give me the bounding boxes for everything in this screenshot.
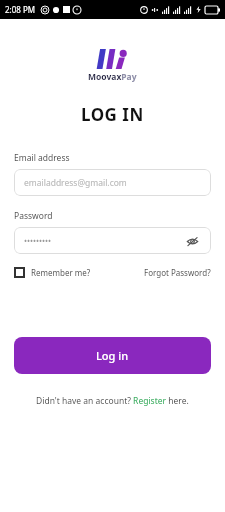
button[interactable]: Show password <box>183 232 201 250</box>
staticText: Didn't have an account? Register here. <box>36 395 189 407</box>
button[interactable]: Log in <box>14 337 211 374</box>
staticText: Forgot Password? <box>144 267 211 278</box>
button[interactable]: Remember me? <box>14 267 91 278</box>
staticText: 2:08 PM <box>5 4 36 15</box>
staticText: Email address <box>14 152 70 164</box>
button[interactable]: Didn't have an account? Register here. <box>36 395 189 407</box>
staticText: LOG IN <box>81 103 144 126</box>
staticText: Log in <box>96 348 129 363</box>
button[interactable]: emailaddress@gmail.com <box>14 169 211 196</box>
staticText: ••••••••• <box>24 235 52 246</box>
staticText: MoovaxPay <box>88 71 137 83</box>
button[interactable]: Forgot Password? <box>144 267 211 278</box>
staticText: emailaddress@gmail.com <box>24 177 127 189</box>
button[interactable]: ••••••••• <box>14 227 211 254</box>
staticText: Password <box>14 210 53 222</box>
staticText: Remember me? <box>31 267 91 278</box>
